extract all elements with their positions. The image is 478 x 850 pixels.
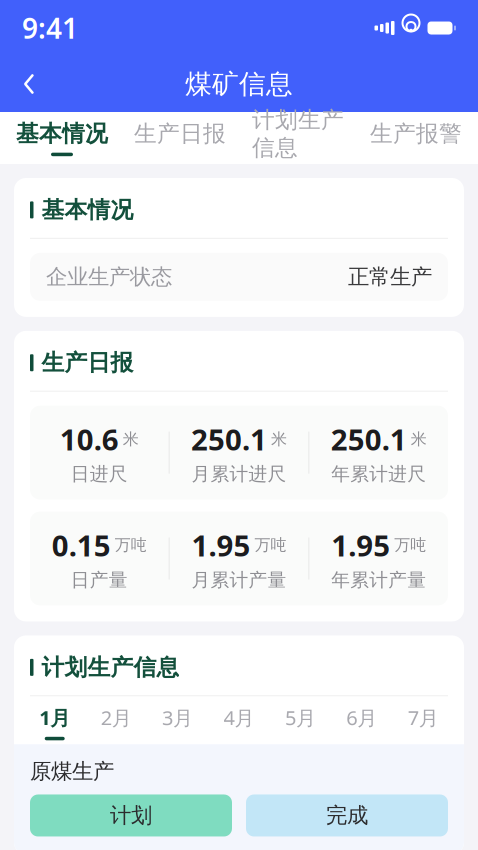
staticText: 计划生产信息 bbox=[252, 106, 344, 162]
staticText: 年累计进尺 bbox=[331, 463, 426, 485]
button[interactable]: Back bbox=[6, 61, 52, 107]
staticText: 万吨 bbox=[254, 535, 286, 555]
button[interactable]: 基本情况 bbox=[3, 112, 121, 164]
button[interactable]: 4月 bbox=[208, 700, 270, 744]
staticText: 生产日报 bbox=[41, 349, 133, 377]
staticText: 完成 bbox=[326, 802, 368, 829]
staticText: 10.6 bbox=[60, 420, 119, 459]
staticText: 年累计产量 bbox=[331, 568, 426, 591]
button[interactable]: 1月 bbox=[24, 700, 85, 744]
staticText: 250.1 bbox=[331, 420, 407, 459]
staticText: 日进尺 bbox=[71, 463, 128, 485]
staticText: 生产报警 bbox=[370, 120, 462, 148]
staticText: 万吨 bbox=[115, 535, 147, 555]
staticText: 煤矿信息 bbox=[185, 68, 293, 100]
button[interactable]: 计划 bbox=[30, 794, 232, 836]
staticText: 7月 bbox=[408, 704, 439, 731]
staticText: 万吨 bbox=[394, 535, 426, 555]
staticText: 基本情况 bbox=[16, 120, 108, 148]
staticText: 0.15 bbox=[52, 526, 111, 565]
staticText: 月累计进尺 bbox=[191, 463, 286, 485]
staticText: 企业生产状态 bbox=[46, 264, 172, 290]
staticText: 米 bbox=[411, 429, 427, 449]
staticText: 日产量 bbox=[71, 568, 128, 591]
staticText: 1月 bbox=[39, 704, 70, 731]
staticText: 1.95 bbox=[331, 526, 390, 565]
staticText: 3月 bbox=[162, 704, 193, 731]
button[interactable]: 计划生产信息 bbox=[239, 112, 357, 164]
staticText: 计划 bbox=[110, 802, 152, 829]
staticText: 250.1 bbox=[191, 420, 267, 459]
staticText: 4月 bbox=[223, 704, 254, 731]
staticText: 计划生产信息 bbox=[41, 653, 179, 681]
button[interactable]: 6月 bbox=[331, 700, 392, 744]
staticText: 米 bbox=[271, 429, 287, 449]
button[interactable]: 生产报警 bbox=[357, 112, 475, 164]
staticText: 原煤生产 bbox=[30, 758, 114, 784]
button[interactable]: 完成 bbox=[246, 794, 448, 836]
staticText: 1.95 bbox=[191, 526, 250, 565]
staticText: 基本情况 bbox=[41, 196, 133, 224]
staticText: 9:41 bbox=[22, 9, 78, 47]
staticText: 2月 bbox=[101, 704, 132, 731]
staticText: 米 bbox=[123, 429, 139, 449]
staticText: 正常生产 bbox=[348, 264, 432, 290]
staticText: 月累计产量 bbox=[191, 568, 286, 591]
staticText: 6月 bbox=[346, 704, 377, 731]
button[interactable]: 2月 bbox=[85, 700, 147, 744]
button[interactable]: 5月 bbox=[270, 700, 331, 744]
button[interactable]: 生产日报 bbox=[121, 112, 239, 164]
button[interactable]: 7月 bbox=[393, 700, 454, 744]
staticText: 5月 bbox=[285, 704, 316, 731]
staticText: 生产日报 bbox=[134, 120, 226, 148]
button[interactable]: 3月 bbox=[147, 700, 208, 744]
